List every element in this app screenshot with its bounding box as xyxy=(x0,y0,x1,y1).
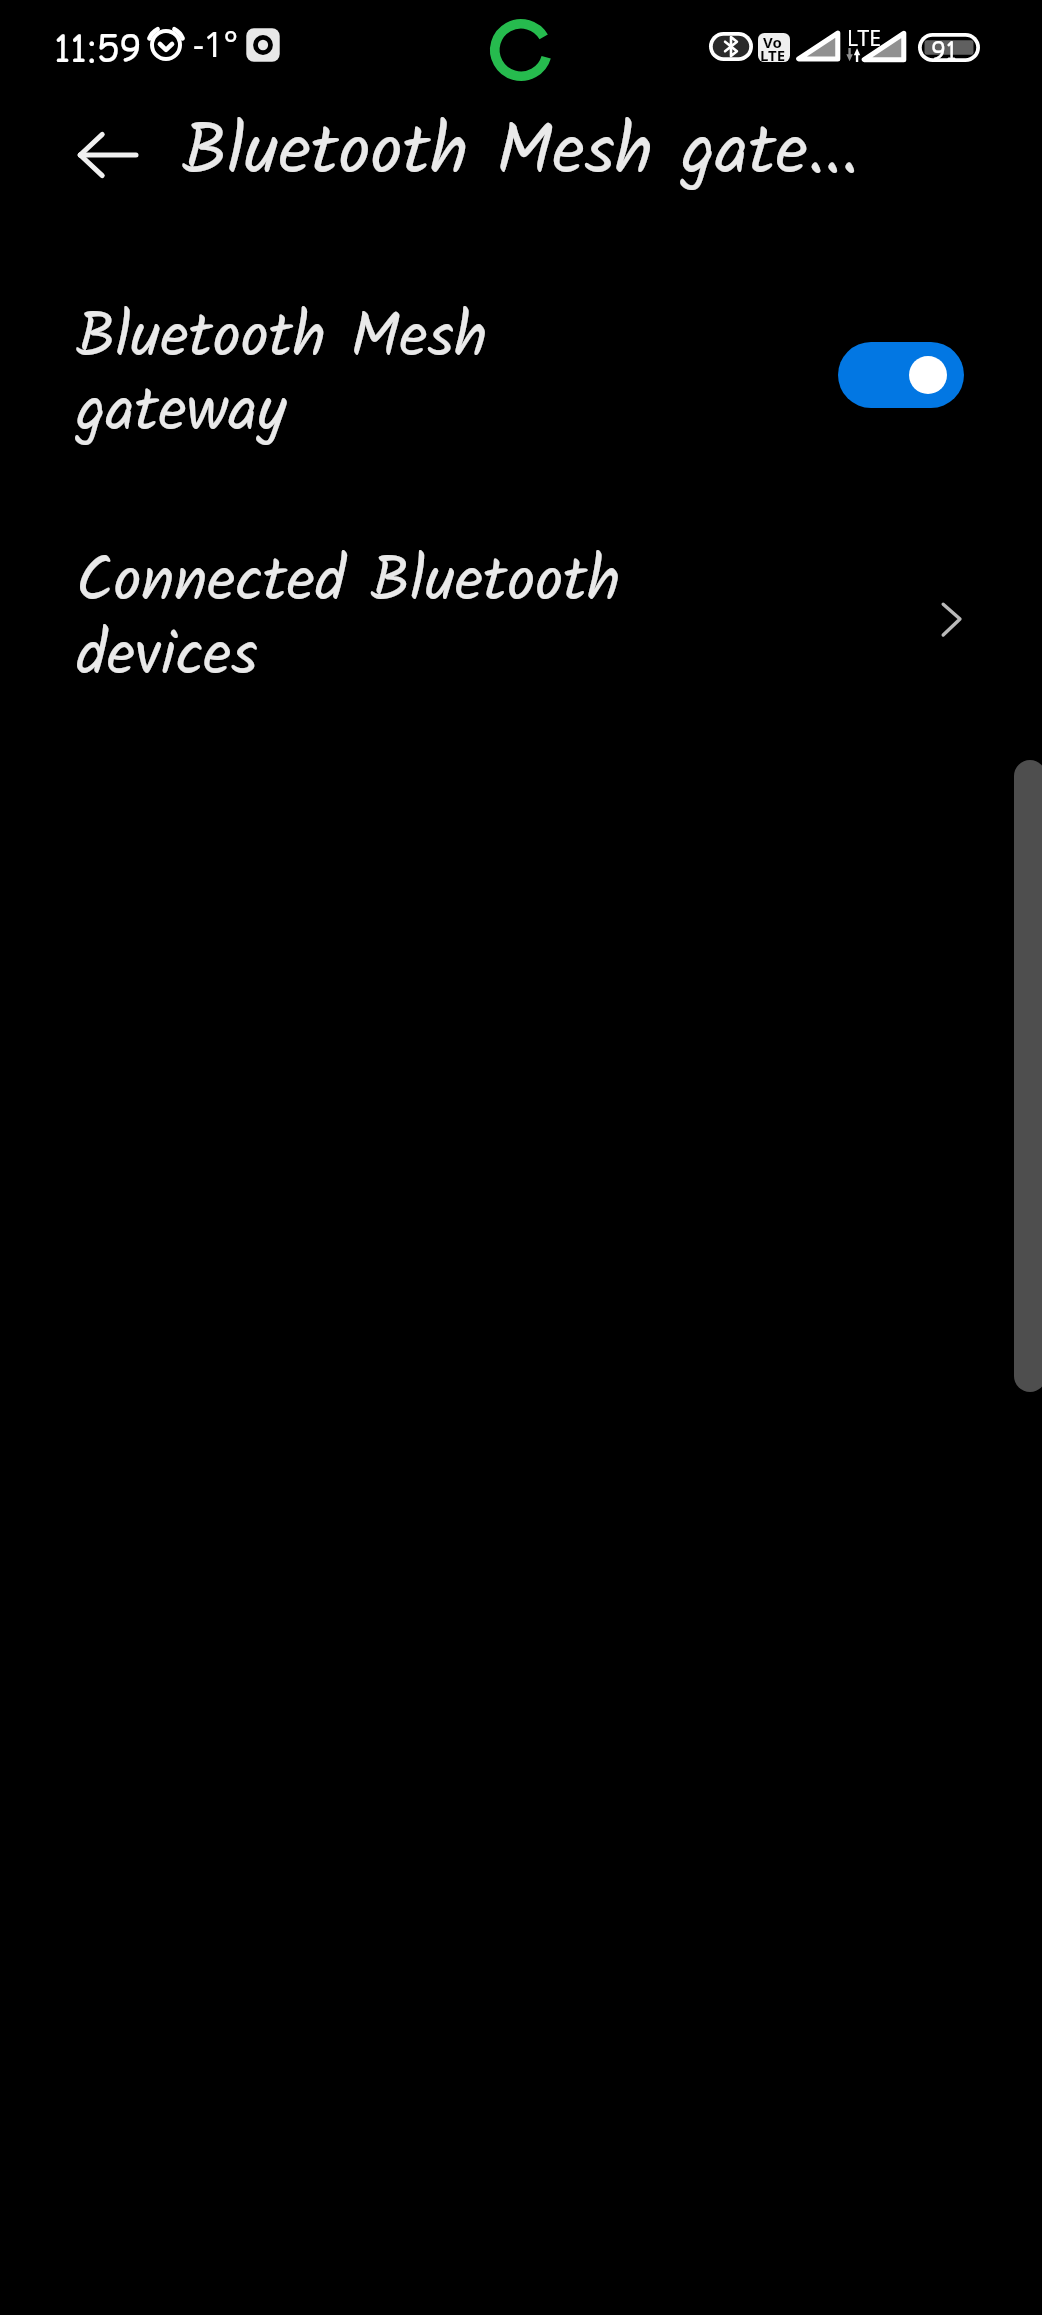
staticText: Bluetooth Mesh gate... xyxy=(182,98,859,211)
other: Battery 91 percent xyxy=(918,33,980,62)
button[interactable]: Connected Bluetooth devices xyxy=(0,512,1042,702)
staticText: Connected Bluetooth devices xyxy=(76,534,621,707)
other: Signal strength SIM 2 xyxy=(861,30,907,63)
staticText: LTE xyxy=(760,45,786,65)
staticText: -1° xyxy=(193,21,238,67)
staticText: 91 xyxy=(931,34,957,63)
button[interactable]: Back xyxy=(62,114,152,204)
other: Signal strength SIM 1 xyxy=(795,29,841,63)
button[interactable]: Bluetooth Mesh gateway xyxy=(0,268,1042,458)
staticText: LTE xyxy=(847,24,881,53)
staticText: Bluetooth Mesh gateway xyxy=(76,290,488,463)
staticText: 11:59 xyxy=(54,23,142,73)
button[interactable]: Bluetooth Mesh gateway on xyxy=(838,342,964,408)
staticText: Vo xyxy=(763,32,782,52)
other: Bluetooth on xyxy=(709,32,753,61)
other: Screen recorder xyxy=(244,26,282,64)
other: Alarm set xyxy=(146,21,186,61)
